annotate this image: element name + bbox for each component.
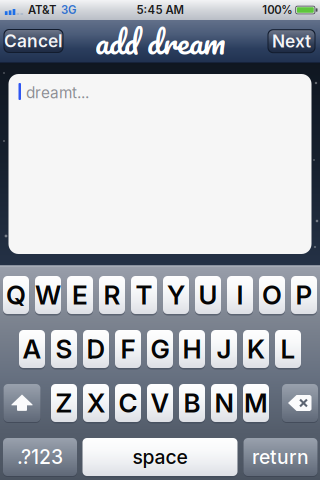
staticText: 100% <box>262 3 292 17</box>
staticText: P <box>295 279 312 311</box>
staticText: AT&T <box>28 3 56 17</box>
button[interactable]: P <box>291 275 317 315</box>
staticText: V <box>150 387 169 419</box>
staticText: add dream <box>95 15 225 68</box>
button[interactable]: A <box>19 329 45 369</box>
staticText: S <box>55 333 72 365</box>
staticText: I <box>236 279 243 311</box>
button[interactable]: S <box>51 329 77 369</box>
staticText: R <box>103 279 120 311</box>
button[interactable]: O <box>259 275 285 315</box>
button[interactable]: .?123 <box>3 437 77 476</box>
staticText: A <box>22 333 41 365</box>
staticText: J <box>216 333 231 365</box>
staticText: 3G <box>61 3 76 17</box>
button[interactable]: T <box>131 275 157 315</box>
button[interactable]: H <box>179 329 205 369</box>
staticText: F <box>120 333 135 365</box>
staticText: Q <box>6 279 26 311</box>
button[interactable]: Cancel <box>3 29 63 53</box>
staticText: M <box>244 387 268 419</box>
staticText: space <box>132 445 187 469</box>
staticText: Next <box>272 31 311 52</box>
button[interactable]: Z <box>51 383 77 423</box>
staticText: C <box>118 387 137 419</box>
button[interactable]: I <box>227 275 253 315</box>
staticText: dreamt... <box>26 83 89 102</box>
button[interactable]: V <box>147 383 173 423</box>
button[interactable]: E <box>67 275 93 315</box>
staticText: 5:45 AM <box>136 3 183 17</box>
staticText: H <box>182 333 201 365</box>
staticText: X <box>87 387 105 419</box>
button[interactable]: W <box>35 275 61 315</box>
button[interactable]: space <box>82 437 237 477</box>
button[interactable]: D <box>83 329 109 369</box>
button[interactable]: N <box>211 383 237 423</box>
staticText: U <box>198 279 217 311</box>
button[interactable]: G <box>147 329 173 369</box>
button[interactable]: U <box>195 275 221 315</box>
staticText: Y <box>167 279 185 311</box>
staticText: N <box>214 387 233 419</box>
staticText: D <box>86 333 105 365</box>
button[interactable]: Shift <box>3 383 40 422</box>
button[interactable]: B <box>179 383 205 423</box>
button[interactable]: R <box>99 275 125 315</box>
staticText: E <box>72 279 88 311</box>
staticText: O <box>262 279 282 311</box>
button[interactable]: Delete <box>282 383 318 422</box>
staticText: Cancel <box>4 30 63 51</box>
button[interactable]: C <box>115 383 141 423</box>
staticText: K <box>247 333 265 365</box>
button[interactable]: K <box>243 329 269 369</box>
button[interactable]: Next <box>267 29 315 53</box>
button[interactable]: L <box>275 329 301 369</box>
button[interactable]: X <box>83 383 109 423</box>
button[interactable]: J <box>211 329 237 369</box>
staticText: G <box>150 333 169 365</box>
staticText: B <box>183 387 200 419</box>
button[interactable]: F <box>115 329 141 369</box>
staticText: .?123 <box>17 445 63 469</box>
staticText: W <box>35 279 61 311</box>
button[interactable]: Y <box>163 275 189 315</box>
staticText: T <box>135 279 152 311</box>
button[interactable]: Q <box>3 275 29 315</box>
staticText: L <box>280 333 295 365</box>
staticText: Z <box>55 387 72 419</box>
staticText: return <box>252 445 309 469</box>
button[interactable]: M <box>243 383 269 423</box>
button[interactable]: return <box>243 437 317 476</box>
